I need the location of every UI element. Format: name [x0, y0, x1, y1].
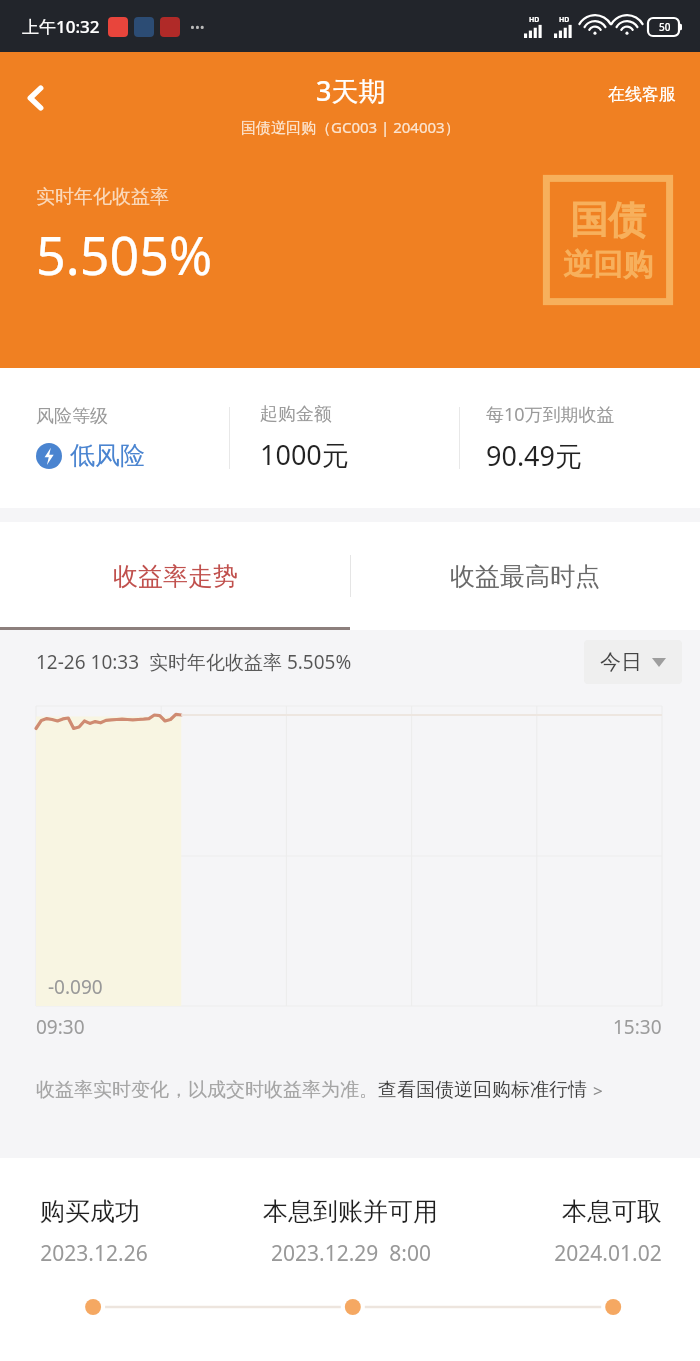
button[interactable]: 收益率实时变化，以成交时收益率为准。 [36, 1078, 700, 1102]
staticText: 2023.12.29 8:00 [271, 1239, 431, 1268]
staticText: 2023.12.26 [40, 1239, 148, 1268]
staticText: 收益率走势 [113, 561, 238, 592]
button[interactable]: 本息可取 [467, 1196, 662, 1268]
staticText: 本息到账并可用 [263, 1196, 438, 1227]
button[interactable]: 收益率走势 [0, 522, 350, 630]
button[interactable]: 本息到账并可用 [234, 1196, 467, 1268]
staticText: 实时年化收益率 [36, 185, 169, 209]
staticText: 购买成功 [40, 1196, 140, 1227]
staticText: 09:30 [36, 1014, 85, 1040]
staticText: 在线客服 [608, 84, 676, 105]
button[interactable]: 购买成功 [40, 1196, 234, 1268]
staticText: 3天期 [316, 72, 386, 109]
staticText: 50 [659, 20, 671, 34]
staticText: 低风险 [70, 440, 145, 471]
staticText: 每10万到期收益 [486, 402, 615, 427]
staticText: 15:30 [613, 1014, 662, 1040]
staticText: HD [559, 15, 570, 25]
button[interactable]: 收益最高时点 [350, 522, 700, 630]
staticText: 2024.01.02 [554, 1239, 662, 1268]
staticText: 逆回购 [563, 246, 653, 284]
staticText: 上午10:32 [22, 15, 100, 38]
staticText: > [593, 1079, 603, 1102]
button[interactable]: 在线客服 [602, 78, 682, 111]
button[interactable]: Back [8, 70, 64, 126]
staticText: 国债逆回购（GC003 | 204003） [241, 117, 460, 137]
staticText: 收益率实时变化，以成交时收益率为准。 [36, 1078, 378, 1102]
staticText: -0.090 [48, 974, 103, 1000]
staticText: 收益最高时点 [450, 561, 600, 592]
staticText: HD [529, 15, 540, 25]
staticText: ••• [190, 18, 205, 36]
staticText: 风险等级 [36, 405, 108, 428]
button[interactable]: 今日 [584, 640, 682, 684]
staticText: 12-26 10:33 实时年化收益率 5.505% [36, 649, 352, 675]
staticText: 5.505% [36, 219, 213, 290]
staticText: 90.49元 [486, 437, 583, 474]
staticText: 1000元 [260, 436, 349, 473]
staticText: 国债 [570, 196, 646, 244]
staticText: 今日 [600, 649, 642, 675]
staticText: 本息可取 [562, 1196, 662, 1227]
staticText: 查看国债逆回购标准行情 [378, 1078, 587, 1102]
staticText: 起购金额 [260, 403, 332, 426]
